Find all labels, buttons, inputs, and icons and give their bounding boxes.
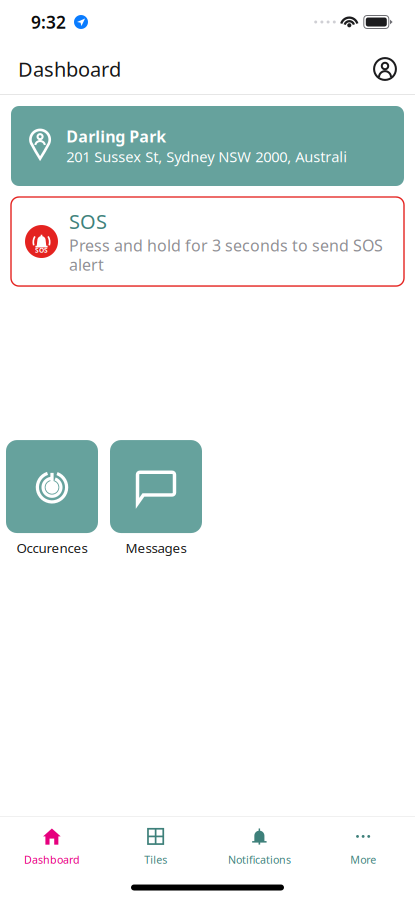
button[interactable]: SOS — [11, 197, 404, 286]
staticText: Tiles — [144, 852, 167, 867]
button[interactable]: Darling Park — [11, 106, 404, 186]
button[interactable]: Account — [365, 49, 405, 89]
button[interactable]: Tiles — [104, 816, 208, 872]
staticText: More — [350, 852, 376, 867]
staticText: 9:32 — [31, 10, 66, 33]
staticText: Notifications — [228, 852, 291, 867]
staticText: Dashboard — [18, 56, 121, 82]
button[interactable]: Notifications — [207, 816, 311, 872]
staticText: SOS — [69, 208, 107, 235]
staticText: Messages — [125, 539, 186, 557]
staticText: 201 Sussex St, Sydney NSW 2000, Australi — [66, 147, 347, 166]
staticText: Press and hold for 3 seconds to send SOS… — [69, 235, 383, 275]
staticText: Darling Park — [66, 126, 166, 147]
staticText: Dashboard — [24, 852, 80, 867]
button[interactable]: More — [311, 816, 415, 872]
button[interactable]: Dashboard — [0, 816, 104, 872]
button[interactable]: Messages — [110, 440, 202, 557]
staticText: Occurences — [16, 539, 87, 557]
staticText: SOS — [35, 246, 48, 255]
button[interactable]: Occurences — [6, 440, 98, 557]
